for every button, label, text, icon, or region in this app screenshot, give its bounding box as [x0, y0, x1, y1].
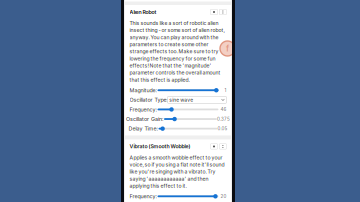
staticText: Vibrato (Smooth Wobble) — [129, 143, 190, 150]
staticText: f — [226, 44, 229, 53]
staticText: 46 — [220, 107, 226, 112]
staticText: This sounds like a sort of robotic alien… — [129, 20, 224, 83]
button[interactable]: Frequency: — [129, 191, 226, 201]
staticText: sine wave — [169, 97, 193, 103]
button[interactable]: Oscillator Gain: — [129, 114, 226, 124]
button[interactable]: Delay Time: — [129, 124, 226, 133]
button[interactable]: Magnitude: — [129, 85, 226, 95]
button[interactable]: Play preview — [210, 9, 218, 15]
staticText: 1 — [224, 87, 226, 93]
staticText: Alien Robot — [129, 9, 156, 15]
button[interactable]: sine wave — [167, 96, 226, 103]
button[interactable]: Frequency: — [129, 105, 226, 114]
staticText: Applies a smooth wobble effect to your v… — [129, 154, 224, 189]
staticText: Magnitude: — [129, 87, 157, 93]
staticText: Oscillator Type: — [129, 97, 168, 103]
staticText: Delay Time: — [128, 125, 158, 132]
staticText: 0.375 — [217, 116, 230, 122]
button[interactable]: More options — [219, 144, 226, 149]
staticText: 0.05 — [217, 126, 227, 131]
staticText: Frequency: — [129, 193, 157, 200]
staticText: Frequency: — [129, 106, 157, 113]
staticText: Oscillator Gain: — [126, 116, 164, 122]
button[interactable]: Play preview — [210, 144, 218, 149]
staticText: 20 — [220, 194, 226, 199]
button[interactable]: More options — [219, 9, 226, 15]
